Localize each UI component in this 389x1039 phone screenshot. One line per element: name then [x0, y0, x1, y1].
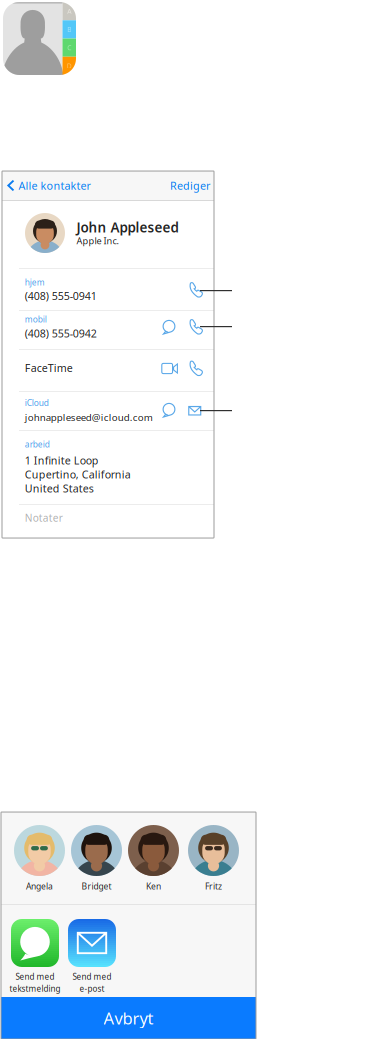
button[interactable]: Angela — [12, 825, 67, 892]
staticText: A — [67, 7, 71, 16]
staticText: Send med — [72, 971, 111, 982]
staticText: arbeid — [25, 438, 50, 450]
staticText: United States — [25, 481, 94, 495]
staticText: Apple Inc. — [76, 234, 118, 247]
button[interactable]: Bridget — [69, 825, 124, 892]
staticText: Bridget — [81, 880, 111, 892]
staticText: 1 Infinite Loop — [25, 453, 99, 467]
button[interactable]: Rediger — [170, 171, 214, 200]
staticText: B — [67, 25, 71, 34]
staticText: (408) 555-0942 — [25, 326, 97, 340]
button[interactable]: Alle kontakter — [2, 171, 90, 200]
staticText: mobil — [25, 313, 47, 325]
staticText: C — [67, 43, 71, 52]
staticText: Notater — [25, 511, 63, 525]
button[interactable]: Fritz — [186, 825, 241, 892]
staticText: Send med — [15, 971, 54, 982]
staticText: Alle kontakter — [18, 178, 90, 193]
staticText: Fritz — [205, 880, 222, 892]
staticText: Angela — [26, 880, 53, 892]
staticText: Rediger — [170, 178, 210, 193]
button[interactable]: Send med — [6, 919, 64, 994]
staticText: e-post — [79, 983, 104, 994]
staticText: FaceTime — [25, 360, 73, 375]
staticText: (408) 555-0941 — [25, 288, 97, 303]
button[interactable]: Send med — [63, 919, 121, 994]
staticText: hjem — [25, 276, 45, 288]
staticText: Cupertino, California — [25, 467, 131, 481]
staticText: johnappleseed@icloud.com — [25, 410, 153, 424]
button[interactable]: Avbryt — [1, 997, 256, 1039]
staticText: D — [67, 61, 72, 70]
staticText: iCloud — [25, 397, 49, 408]
staticText: Ken — [146, 880, 161, 892]
button[interactable]: Ken — [126, 825, 181, 892]
staticText: Avbryt — [103, 1007, 153, 1029]
staticText: tekstmelding — [9, 983, 60, 994]
staticText: John Appleseed — [76, 218, 178, 236]
